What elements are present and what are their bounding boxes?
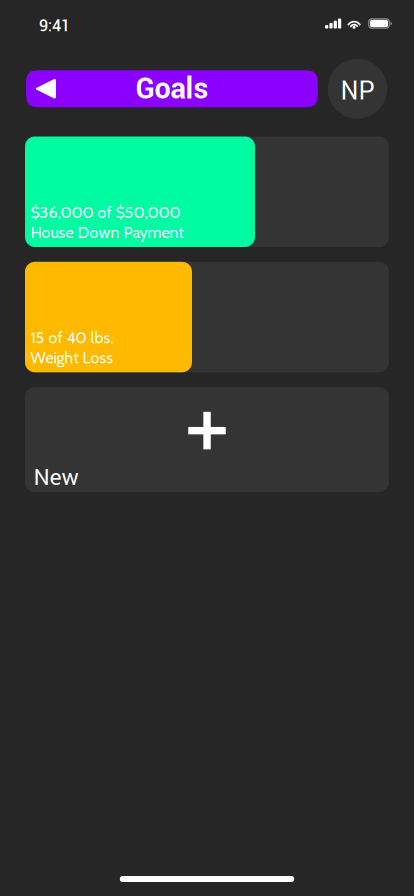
button[interactable]: Profile [328,59,387,118]
staticText: Weight Loss [30,348,113,367]
staticText: 9:41 [39,14,70,38]
staticText: $36,000 of $50,000 [30,203,180,222]
button[interactable]: $36,000 of $50,000 [25,136,389,247]
staticText: Goals [135,68,208,110]
staticText: NP [340,73,374,109]
button[interactable]: New goal [25,387,389,492]
staticText: 15 of 40 lbs. [30,328,113,347]
button[interactable]: Goals [26,70,318,107]
button[interactable]: 15 of 40 lbs. [25,262,389,372]
staticText: House Down Payment [30,223,183,242]
staticText: New [33,461,78,494]
